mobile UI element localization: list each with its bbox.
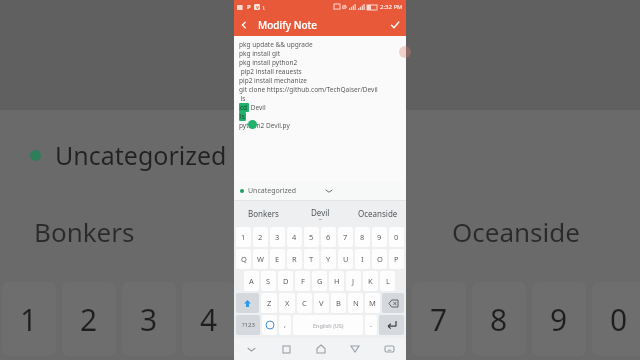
button[interactable]: F	[295, 271, 310, 291]
button[interactable]: Bonkers	[234, 201, 292, 226]
button[interactable]: L	[380, 271, 395, 291]
button[interactable]: ,	[279, 315, 291, 335]
button[interactable]: P	[389, 249, 404, 269]
button[interactable]: G	[312, 271, 327, 291]
staticText: S	[266, 276, 271, 286]
button[interactable]: Oceanside	[349, 201, 406, 226]
button[interactable]: E	[270, 249, 285, 269]
button[interactable]: 7	[338, 227, 353, 247]
staticText: Modify Note	[258, 18, 318, 32]
staticText: 1	[241, 232, 246, 242]
button[interactable]: Y	[321, 249, 336, 269]
button[interactable]: Z	[261, 293, 277, 313]
staticText: Devil	[311, 207, 330, 218]
button[interactable]: K	[363, 271, 378, 291]
staticText: Z	[267, 298, 272, 308]
button[interactable]: Emoji	[262, 315, 277, 335]
button[interactable]: Save	[384, 14, 406, 36]
staticText: git clone https://github.com/TechQaiser/…	[239, 85, 378, 94]
staticText: 2:32 PM	[380, 3, 403, 11]
staticText: C	[302, 298, 307, 308]
button[interactable]: .	[365, 315, 377, 335]
button[interactable]: B	[331, 293, 346, 313]
staticText: X	[285, 298, 290, 308]
button[interactable]: ?123	[236, 315, 260, 335]
staticText: R	[292, 254, 297, 264]
button[interactable]: W	[253, 249, 268, 269]
button[interactable]: U	[338, 249, 353, 269]
staticText: L	[386, 276, 390, 286]
staticText: D	[283, 276, 289, 286]
staticText: pkg install python2	[239, 58, 298, 67]
staticText: 0	[394, 232, 399, 242]
staticText: Devil	[249, 103, 266, 112]
button[interactable]: Switch keyboard	[372, 338, 406, 360]
button[interactable]: 4	[287, 227, 302, 247]
button[interactable]: 6	[321, 227, 336, 247]
button[interactable]: 8	[355, 227, 370, 247]
staticText: v	[256, 4, 259, 10]
button[interactable]: Hide keyboard	[234, 338, 269, 360]
button[interactable]: Space	[293, 315, 363, 335]
staticText: 8	[490, 299, 508, 340]
button[interactable]: 1	[236, 227, 251, 247]
button[interactable]: Recents	[269, 338, 304, 360]
button[interactable]: Shift	[236, 293, 259, 313]
staticText: 3	[140, 299, 158, 340]
button[interactable]: S	[261, 271, 276, 291]
button[interactable]: 9	[372, 227, 387, 247]
button[interactable]: T	[304, 249, 319, 269]
staticText: python2 Devil.py	[239, 121, 290, 130]
staticText: 7	[343, 232, 348, 242]
button[interactable]: N	[348, 293, 363, 313]
staticText: ?123	[242, 321, 255, 329]
staticText: G	[317, 276, 323, 286]
staticText: pip2 install mechanize	[239, 76, 307, 85]
staticText: J	[352, 276, 355, 286]
button[interactable]: Back	[234, 15, 254, 35]
button[interactable]: 2	[253, 227, 268, 247]
staticText: A	[249, 276, 254, 286]
staticText: ʅ	[263, 3, 265, 11]
button[interactable]: Backspace	[382, 293, 404, 313]
button[interactable]: Back	[338, 338, 372, 360]
staticText: M	[369, 298, 376, 308]
button[interactable]: D	[278, 271, 293, 291]
staticText: 9	[377, 232, 382, 242]
button[interactable]: X	[279, 293, 295, 313]
staticText: T	[309, 254, 314, 264]
staticText: W	[257, 254, 264, 264]
staticText: 6	[326, 232, 331, 242]
button[interactable]: H	[329, 271, 344, 291]
button[interactable]: 5	[304, 227, 319, 247]
button[interactable]: J	[346, 271, 361, 291]
button[interactable]: O	[372, 249, 387, 269]
button[interactable]: 0	[389, 227, 404, 247]
staticText: pip2 install reauests	[239, 67, 302, 76]
button[interactable]: 3	[270, 227, 285, 247]
button[interactable]: C	[297, 293, 312, 313]
button[interactable]: R	[287, 249, 302, 269]
button[interactable]: Home	[304, 338, 338, 360]
button[interactable]: I	[355, 249, 370, 269]
button[interactable]: V	[314, 293, 329, 313]
button[interactable]: Uncategorized	[234, 182, 406, 200]
staticText: 2	[80, 299, 98, 340]
staticText: Ø	[342, 3, 347, 11]
button[interactable]: Devil	[292, 201, 349, 226]
staticText: Bonkers	[248, 208, 279, 219]
staticText: Uncategorized	[248, 186, 296, 196]
button[interactable]: A	[244, 271, 259, 291]
staticText: 0	[610, 299, 628, 340]
staticText: cd	[240, 103, 248, 112]
staticText: N	[353, 298, 359, 308]
button[interactable]: Enter	[379, 315, 404, 335]
staticText: Uncategorized	[55, 138, 227, 172]
button[interactable]: M	[365, 293, 380, 313]
staticText: 3	[275, 232, 280, 242]
staticText: P	[247, 3, 251, 11]
button[interactable]: Q	[236, 249, 251, 269]
staticText: I	[361, 254, 364, 264]
staticText: ls	[240, 112, 245, 121]
staticText: P	[394, 254, 399, 264]
